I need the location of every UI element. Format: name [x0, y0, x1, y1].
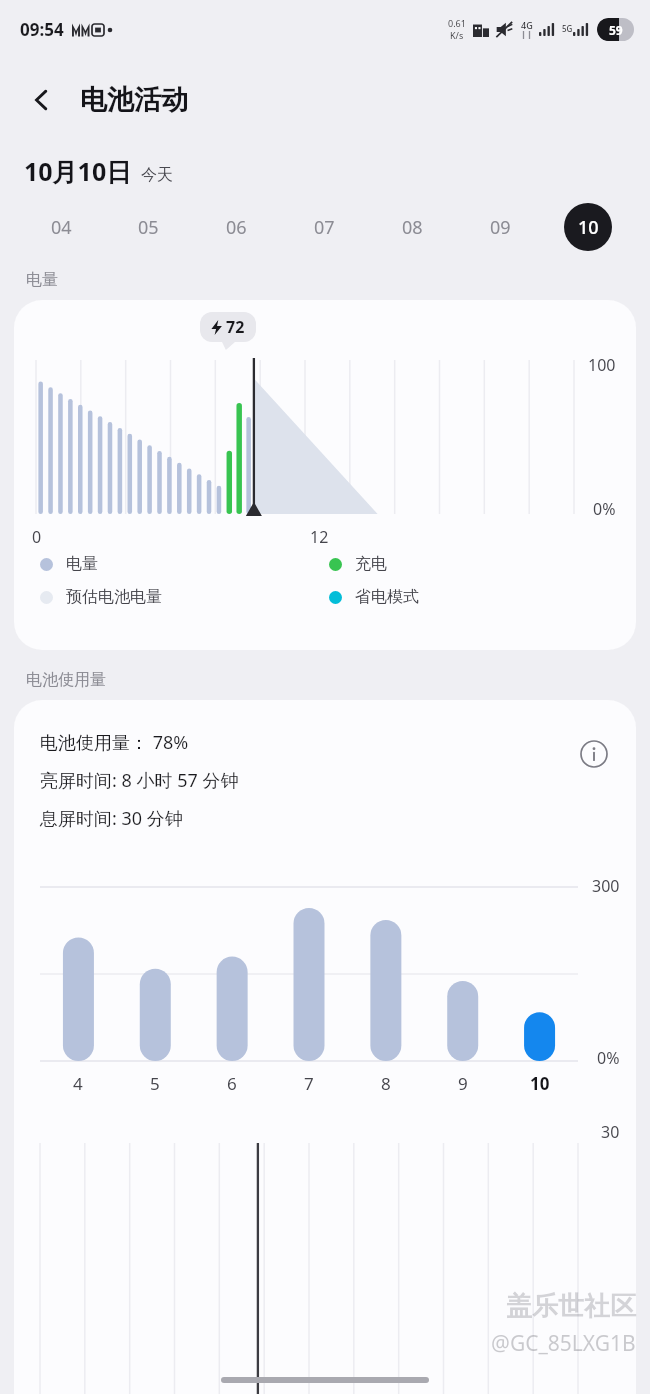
staticText: 省电模式	[355, 587, 419, 607]
staticText: 300	[592, 875, 620, 897]
staticText: 盖乐世社区	[506, 1290, 636, 1323]
button[interactable]: 充电	[329, 554, 618, 574]
staticText: 电池使用量： 78%	[40, 730, 189, 755]
staticText: 充电	[355, 554, 387, 574]
button[interactable]: 8	[347, 1072, 424, 1095]
staticText: 电量	[66, 554, 98, 574]
button[interactable]: 07	[280, 200, 368, 254]
button[interactable]: 05	[105, 200, 192, 254]
button[interactable]: 09	[456, 200, 544, 254]
staticText: 09:54	[20, 18, 64, 41]
staticText: 4G	[521, 19, 533, 31]
button[interactable]: 10	[544, 200, 632, 254]
staticText: 5	[150, 1072, 160, 1095]
button[interactable]: 10	[501, 1072, 578, 1095]
button[interactable]: 06	[192, 200, 280, 254]
button[interactable]: 7	[270, 1072, 347, 1095]
button[interactable]: 9	[424, 1072, 501, 1095]
staticText: 06	[226, 215, 247, 240]
staticText: 9	[458, 1072, 468, 1095]
staticText: 5G	[562, 23, 573, 34]
button[interactable]: 5	[116, 1072, 193, 1095]
button[interactable]: More information	[570, 730, 618, 778]
staticText: 亮屏时间: 8 小时 57 分钟	[40, 768, 239, 793]
staticText: 07	[314, 215, 335, 240]
staticText: 6	[227, 1072, 237, 1095]
button[interactable]: 电量	[40, 554, 329, 574]
button[interactable]: 72	[14, 300, 636, 650]
staticText: 09	[490, 215, 511, 240]
staticText: 0.61	[448, 17, 466, 29]
staticText: 电池使用量	[26, 670, 106, 690]
staticText: K/s	[450, 29, 464, 41]
staticText: 04	[51, 215, 72, 240]
staticText: 8	[381, 1072, 391, 1095]
staticText: 10	[578, 215, 599, 240]
button[interactable]: 省电模式	[329, 587, 618, 607]
button[interactable]: 6	[193, 1072, 270, 1095]
button[interactable]: 4	[40, 1072, 116, 1095]
button[interactable]: 08	[368, 200, 456, 254]
staticText: 4	[73, 1072, 83, 1095]
staticText: 0	[32, 526, 42, 548]
staticText: 05	[138, 215, 159, 240]
staticText: 100	[588, 354, 616, 376]
staticText: 今天	[141, 165, 173, 185]
staticText: @GC_85LXG1B	[491, 1329, 636, 1358]
staticText: 08	[402, 215, 423, 240]
staticText: 息屏时间: 30 分钟	[40, 806, 183, 831]
staticText: 30	[601, 1121, 620, 1143]
staticText: 电池活动	[80, 83, 188, 117]
staticText: 12	[310, 526, 329, 548]
staticText: 0%	[597, 1047, 620, 1069]
staticText: 10	[530, 1072, 550, 1095]
staticText: 72	[226, 316, 245, 338]
button[interactable]: Back	[16, 74, 68, 126]
button[interactable]: 预估电池电量	[40, 587, 329, 607]
button[interactable]: 04	[18, 200, 105, 254]
staticText: 预估电池电量	[66, 587, 162, 607]
staticText: 7	[304, 1072, 314, 1095]
staticText: 电量	[26, 270, 58, 290]
staticText: 10月10日	[24, 154, 132, 188]
staticText: 59	[609, 22, 623, 38]
staticText: 0%	[593, 498, 616, 520]
